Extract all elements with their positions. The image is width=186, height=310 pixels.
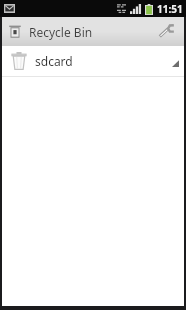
staticText: 11:51 (157, 2, 183, 16)
button[interactable]: sdcard (2, 46, 184, 76)
staticText: sdcard (35, 53, 73, 69)
button[interactable]: Settings (152, 17, 182, 46)
staticText: Recycle Bin (29, 24, 93, 40)
